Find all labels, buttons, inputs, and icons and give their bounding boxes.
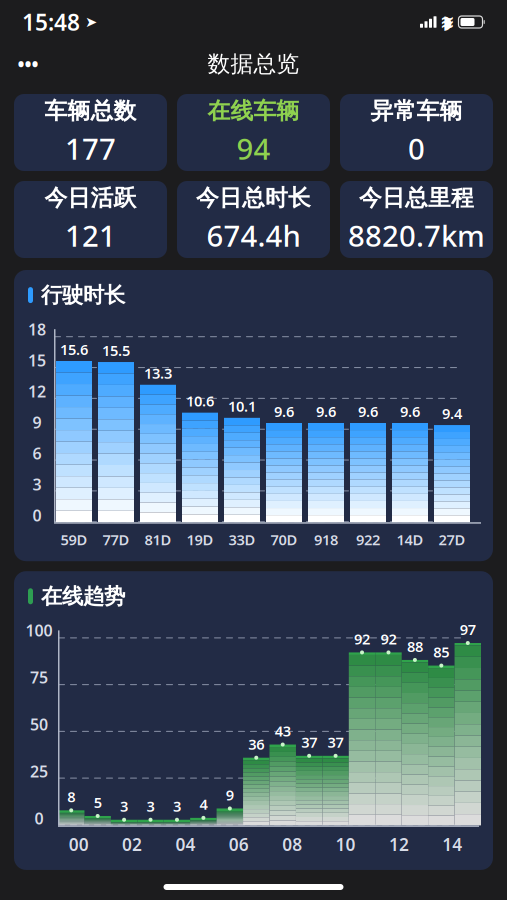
staticText: 9.4 — [442, 404, 462, 423]
staticText: 9.6 — [358, 401, 378, 421]
staticText: 18 — [28, 319, 46, 340]
staticText: 77D — [102, 530, 129, 549]
button[interactable]: 在线车辆 — [177, 94, 330, 171]
button[interactable]: 今日总时长 — [177, 181, 330, 258]
staticText: 9 — [226, 785, 234, 804]
staticText: 今日总里程 — [359, 184, 474, 212]
staticText: 02 — [122, 833, 142, 856]
staticText: 81D — [144, 530, 171, 549]
staticText: 674.4h — [206, 216, 300, 255]
staticText: 177 — [65, 129, 116, 168]
staticText: 100 — [25, 620, 52, 641]
staticText: 3 — [120, 796, 128, 816]
staticText: 今日活跃 — [44, 184, 136, 212]
staticText: 37 — [328, 732, 344, 752]
staticText: 9.6 — [400, 401, 420, 421]
staticText: 9.6 — [316, 401, 336, 421]
staticText: 今日总时长 — [196, 184, 311, 212]
staticText: 14 — [442, 833, 462, 856]
staticText: 94 — [236, 129, 270, 168]
staticText: 08 — [282, 833, 302, 856]
button[interactable]: More options — [6, 46, 50, 82]
staticText: 10 — [336, 833, 356, 856]
staticText: 121 — [65, 216, 116, 255]
staticText: 12 — [389, 833, 409, 856]
staticText: 04 — [175, 833, 195, 856]
staticText: 33D — [228, 530, 255, 549]
staticText: 25 — [30, 761, 48, 782]
staticText: 3 — [32, 474, 41, 495]
staticText: 13.3 — [144, 363, 172, 383]
staticText: 4 — [199, 794, 207, 814]
staticText: 3 — [173, 796, 181, 816]
staticText: 数据总览 — [207, 50, 299, 78]
staticText: 06 — [229, 833, 249, 856]
staticText: 14D — [396, 530, 423, 549]
staticText: 15 — [28, 350, 46, 371]
staticText: 918 — [314, 530, 338, 549]
staticText: 00 — [69, 833, 89, 856]
staticText: 9 — [32, 412, 41, 433]
staticText: 12 — [28, 381, 46, 402]
staticText: 8 — [67, 787, 75, 806]
staticText: 27D — [438, 530, 465, 549]
staticText: 50 — [30, 714, 48, 735]
staticText: 36 — [248, 734, 264, 754]
staticText: 异常车辆 — [370, 97, 462, 125]
staticText: ••• — [17, 52, 38, 76]
button[interactable]: 异常车辆 — [340, 94, 493, 171]
staticText: 88 — [407, 636, 423, 656]
staticText: 10.1 — [228, 396, 256, 416]
staticText: 5 — [94, 792, 102, 812]
staticText: 15:48 — [22, 7, 80, 37]
staticText: 85 — [433, 642, 449, 662]
staticText: 75 — [30, 667, 48, 688]
staticText: 6 — [32, 443, 41, 464]
staticText: 15.6 — [60, 339, 88, 359]
staticText: 10.6 — [186, 391, 214, 411]
staticText: 0 — [408, 129, 425, 168]
staticText: 97 — [460, 619, 476, 639]
staticText: 8820.7km — [348, 216, 485, 255]
staticText: 43 — [275, 721, 291, 741]
button[interactable]: 今日总里程 — [340, 181, 493, 258]
staticText: 在线车辆 — [207, 97, 299, 125]
staticText: 92 — [380, 629, 396, 648]
button[interactable]: 车辆总数 — [14, 94, 167, 171]
staticText: ➤ — [85, 14, 97, 30]
staticText: 92 — [354, 629, 370, 648]
staticText: 37 — [301, 732, 317, 752]
staticText: 15.5 — [102, 341, 130, 360]
staticText: 922 — [356, 530, 380, 549]
staticText: 3 — [146, 796, 154, 816]
staticText: ◗ — [442, 11, 452, 33]
staticText: 19D — [186, 530, 213, 549]
staticText: 0 — [32, 505, 41, 526]
staticText: ≋ — [440, 12, 455, 32]
staticText: 0 — [34, 808, 43, 829]
button[interactable]: 今日活跃 — [14, 181, 167, 258]
staticText: 9.6 — [274, 401, 294, 421]
staticText: 在线趋势 — [41, 583, 125, 609]
staticText: 车辆总数 — [44, 97, 136, 125]
staticText: 59D — [60, 530, 87, 549]
staticText: 行驶时长 — [41, 282, 125, 308]
staticText: 70D — [270, 530, 297, 549]
